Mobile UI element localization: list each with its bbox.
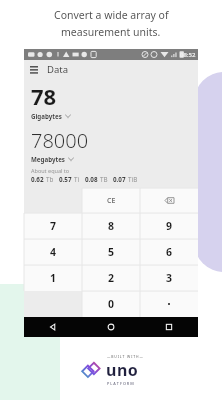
button[interactable]: 5 [82, 239, 140, 265]
button[interactable]: 1 [24, 265, 82, 291]
button[interactable]: Home [82, 317, 140, 337]
button[interactable]: 3 [140, 265, 198, 291]
staticText: 08:52 [180, 51, 196, 59]
staticText: 78 [31, 81, 57, 111]
button[interactable]: 2 [82, 265, 140, 291]
staticText: 5 [108, 245, 115, 259]
staticText: — B U I L T W I T H — [107, 354, 143, 359]
staticText: 0.57 [59, 175, 72, 184]
staticText: 4 [50, 245, 57, 259]
staticText: Convert a wide array of [54, 8, 169, 22]
staticText: 3 [166, 271, 173, 285]
staticText: TiB [128, 175, 138, 184]
staticText: 78000 [31, 127, 89, 154]
button[interactable]: CE [82, 188, 140, 213]
staticText: CE [107, 196, 116, 206]
staticText: About equal to [31, 167, 70, 174]
staticText: uno [106, 359, 139, 381]
staticText: measurement units. [61, 25, 161, 39]
staticText: Ti [74, 175, 80, 184]
button[interactable]: Backspace [140, 188, 198, 213]
staticText: 2 [108, 271, 115, 285]
staticText: P L A T F O R M [107, 381, 134, 386]
staticText: 1 [50, 271, 57, 285]
staticText: 0.62 [31, 175, 44, 184]
staticText: 0 [108, 297, 115, 311]
staticText: Data [47, 63, 69, 76]
staticText: 0.08 [85, 175, 98, 184]
button[interactable]: Open navigation menu [24, 60, 43, 79]
staticText: Gigabytes [31, 112, 62, 120]
staticText: 6 [166, 245, 173, 259]
button[interactable]: 8 [82, 213, 140, 239]
button[interactable]: 0 [82, 291, 140, 317]
button[interactable]: Megabytes [31, 155, 74, 163]
staticText: 8 [108, 219, 115, 233]
button[interactable]: Recent apps [140, 317, 198, 337]
staticText: TB [100, 175, 108, 184]
staticText: Megabytes [31, 155, 65, 163]
button[interactable]: 6 [140, 239, 198, 265]
button[interactable] [140, 291, 198, 317]
staticText: 9 [166, 219, 173, 233]
button[interactable]: Gigabytes [31, 112, 71, 120]
button[interactable]: Back [24, 317, 82, 337]
button[interactable]: 7 [24, 213, 82, 239]
staticText: Tb [46, 175, 54, 184]
button[interactable]: 4 [24, 239, 82, 265]
staticText: 0.07 [113, 175, 126, 184]
button[interactable]: 9 [140, 213, 198, 239]
staticText: 7 [50, 219, 57, 233]
